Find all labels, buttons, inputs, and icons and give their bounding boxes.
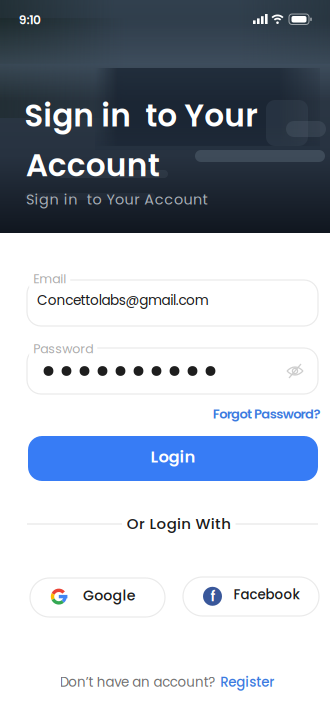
staticText: Email: [33, 270, 66, 287]
staticText: Or Login With: [127, 513, 231, 534]
staticText: Sign in to Your Account: [26, 189, 207, 210]
staticText: Password: [33, 340, 93, 357]
staticText: Don’t have an account?: [60, 673, 215, 691]
staticText: Login: [150, 445, 195, 468]
staticText: 9:10: [19, 11, 41, 29]
button[interactable]: Forgot Password?: [213, 405, 320, 423]
staticText: Account: [26, 144, 160, 187]
staticText: Forgot Password?: [213, 405, 320, 423]
staticText: Register: [220, 673, 274, 691]
button[interactable]: Register: [220, 673, 274, 691]
staticText: Google: [83, 586, 136, 605]
staticText: f: [210, 586, 215, 606]
staticText: Concettolabs@gmail.com: [37, 291, 209, 310]
button[interactable]: Google: [30, 578, 165, 617]
staticText: Facebook: [233, 585, 299, 604]
button[interactable]: Show password: [286, 362, 304, 380]
staticText: Sign in to Your: [24, 94, 258, 137]
button[interactable]: Login: [28, 436, 318, 481]
button[interactable]: f: [183, 577, 319, 616]
